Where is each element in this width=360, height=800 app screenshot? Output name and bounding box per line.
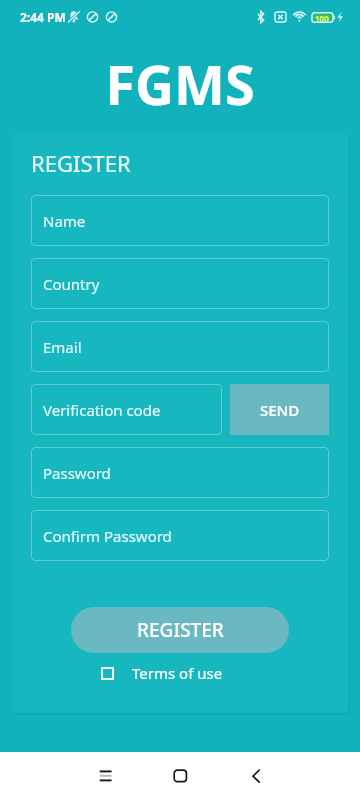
button[interactable]: Confirm Password bbox=[31, 510, 329, 561]
staticText: Country bbox=[43, 274, 100, 294]
staticText: REGISTER bbox=[137, 617, 224, 643]
staticText: Verification code bbox=[43, 400, 161, 420]
staticText: FGMS bbox=[0, 47, 360, 121]
staticText: REGISTER bbox=[31, 148, 131, 178]
staticText: SEND bbox=[260, 400, 300, 420]
button[interactable]: Accept terms of use checkbox bbox=[101, 667, 114, 680]
button[interactable]: Terms of use bbox=[132, 663, 223, 683]
staticText: Password bbox=[43, 463, 111, 483]
staticText: Confirm Password bbox=[43, 526, 172, 546]
button[interactable]: Country bbox=[31, 258, 329, 309]
staticText: 100 bbox=[315, 13, 329, 24]
staticText: Email bbox=[43, 337, 82, 357]
button[interactable]: SEND bbox=[230, 384, 329, 435]
button[interactable]: System navigation bar bbox=[0, 752, 360, 800]
staticText: 2:44 PM bbox=[20, 9, 66, 25]
button[interactable]: Password bbox=[31, 447, 329, 498]
button[interactable]: REGISTER bbox=[71, 607, 289, 653]
staticText: Name bbox=[43, 211, 86, 231]
button[interactable]: Name bbox=[31, 195, 329, 246]
button[interactable]: Verification code bbox=[31, 384, 222, 435]
button[interactable]: Email bbox=[31, 321, 329, 372]
